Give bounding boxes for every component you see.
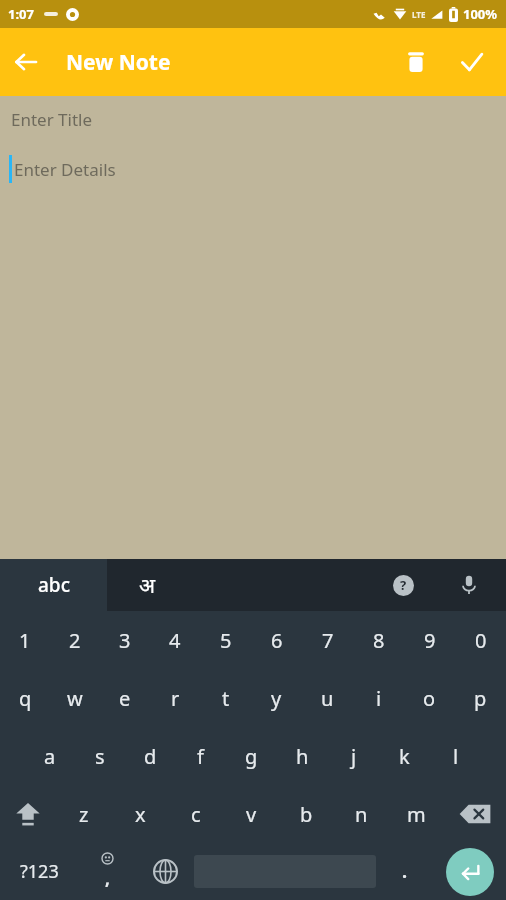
button[interactable]: 8 [353, 611, 404, 669]
button[interactable]: k [379, 727, 430, 785]
button[interactable]: b [279, 785, 334, 843]
staticText: ? [400, 576, 407, 594]
button[interactable]: Emoji and comma [78, 843, 136, 900]
button[interactable]: r [150, 669, 200, 727]
button[interactable]: o [404, 669, 455, 727]
button[interactable]: 2 [50, 611, 100, 669]
button[interactable]: z [56, 785, 112, 843]
button[interactable]: f [175, 727, 226, 785]
staticText: l [453, 743, 459, 770]
button[interactable]: w [50, 669, 100, 727]
button[interactable]: Enter [434, 843, 506, 900]
staticText: h [296, 743, 309, 770]
button[interactable]: n [334, 785, 389, 843]
staticText: v [246, 801, 257, 828]
button[interactable]: 0 [455, 611, 506, 669]
button[interactable]: a [25, 727, 75, 785]
staticText: o [423, 685, 436, 712]
staticText: n [355, 801, 368, 828]
staticText: 5 [220, 627, 232, 654]
button[interactable]: 6 [251, 611, 302, 669]
staticText: m [407, 801, 426, 828]
button[interactable]: अ [139, 571, 156, 600]
button[interactable]: m [389, 785, 444, 843]
staticText: g [245, 743, 258, 770]
button[interactable]: 5 [200, 611, 251, 669]
button[interactable]: q [0, 669, 50, 727]
button[interactable]: d [125, 727, 175, 785]
staticText: s [95, 743, 105, 770]
button[interactable]: u [302, 669, 353, 727]
button[interactable]: j [328, 727, 379, 785]
button[interactable]: i [353, 669, 404, 727]
staticText: 2 [69, 627, 81, 654]
staticText: q [19, 685, 32, 712]
button[interactable]: p [455, 669, 506, 727]
staticText: 7 [322, 627, 334, 654]
staticText: e [119, 685, 131, 712]
staticText: c [191, 801, 201, 828]
staticText: 1:07 [8, 5, 34, 23]
staticText: 1 [19, 627, 31, 654]
button[interactable]: 9 [404, 611, 455, 669]
staticText: f [197, 743, 204, 770]
staticText: . [402, 859, 408, 884]
button[interactable]: Backspace [444, 785, 506, 843]
staticText: 100% [463, 5, 498, 23]
staticText: w [67, 685, 83, 712]
button[interactable]: g [226, 727, 277, 785]
button[interactable]: Back [0, 36, 52, 88]
staticText: , [105, 867, 110, 890]
button[interactable]: Help [384, 566, 422, 604]
button[interactable]: 7 [302, 611, 353, 669]
button[interactable]: e [100, 669, 150, 727]
button[interactable]: 4 [150, 611, 200, 669]
staticText: 8 [373, 627, 385, 654]
button[interactable]: Shift [0, 785, 56, 843]
button[interactable]: Delete [388, 34, 444, 90]
staticText: 4 [169, 627, 181, 654]
staticText: Enter Title [11, 108, 93, 131]
staticText: b [300, 801, 313, 828]
button[interactable]: abc [0, 559, 107, 611]
staticText: k [399, 743, 410, 770]
staticText: r [171, 685, 180, 712]
button[interactable]: c [168, 785, 224, 843]
button[interactable]: 3 [100, 611, 150, 669]
staticText: ?123 [20, 859, 59, 884]
staticText: Enter Details [14, 158, 116, 181]
staticText: i [376, 685, 382, 712]
button[interactable]: ?123 [0, 843, 78, 900]
staticText: p [474, 685, 487, 712]
button[interactable]: y [251, 669, 302, 727]
staticText: z [79, 801, 89, 828]
button[interactable]: s [75, 727, 125, 785]
button[interactable]: 1 [0, 611, 50, 669]
button[interactable]: Voice input [450, 566, 488, 604]
button[interactable]: x [112, 785, 168, 843]
staticText: x [135, 801, 146, 828]
staticText: 9 [424, 627, 436, 654]
staticText: 3 [119, 627, 131, 654]
button[interactable]: . [376, 843, 434, 900]
staticText: a [44, 743, 56, 770]
button[interactable]: t [200, 669, 251, 727]
staticText: LTE [412, 9, 426, 20]
staticText: y [271, 685, 282, 712]
staticText: abc [38, 572, 70, 598]
staticText: 6 [271, 627, 283, 654]
staticText: u [321, 685, 334, 712]
staticText: अ [139, 571, 156, 600]
button[interactable]: Change language [136, 843, 194, 900]
staticText: New Note [66, 48, 171, 77]
staticText: t [222, 685, 230, 712]
button[interactable]: l [430, 727, 481, 785]
button[interactable]: v [224, 785, 279, 843]
staticText: d [144, 743, 157, 770]
staticText: j [351, 743, 357, 770]
button[interactable]: Save [444, 34, 500, 90]
button[interactable]: h [277, 727, 328, 785]
staticText: 0 [475, 627, 487, 654]
